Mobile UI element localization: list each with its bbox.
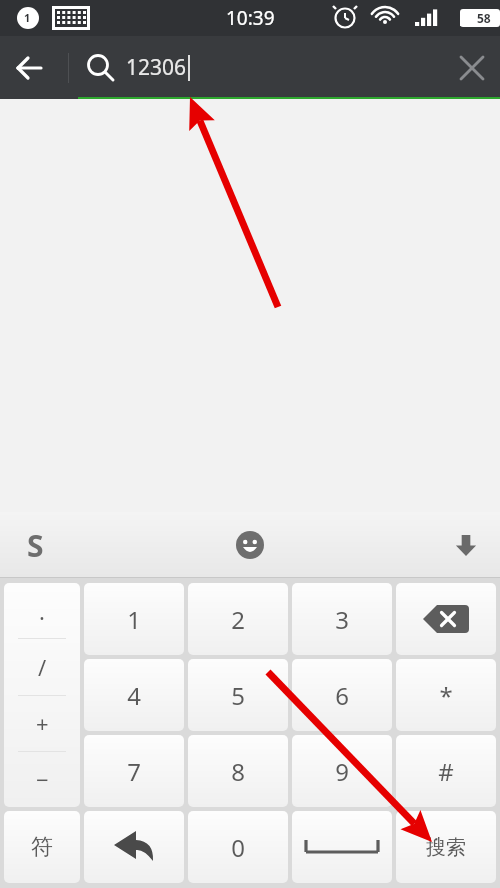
staticText: / <box>38 652 47 682</box>
staticText: 0 <box>231 831 245 864</box>
staticText: 6 <box>335 679 349 712</box>
staticText: 12306 <box>126 53 187 82</box>
button[interactable]: Sogou input <box>8 514 62 576</box>
staticText: 2 <box>231 603 245 636</box>
button[interactable]: Return <box>84 811 184 883</box>
staticText: 8 <box>231 755 245 788</box>
staticText: 58 <box>477 10 491 26</box>
staticText: 5 <box>231 679 245 712</box>
staticText: 10:39 <box>226 5 275 31</box>
staticText: + <box>36 708 49 738</box>
button[interactable]: Delete <box>396 583 496 655</box>
staticText: 7 <box>127 755 141 788</box>
button[interactable]: Clear <box>444 40 500 96</box>
button[interactable]: 符 <box>4 811 80 883</box>
button[interactable]: 8 <box>188 735 288 807</box>
button[interactable]: 2 <box>188 583 288 655</box>
button[interactable]: 7 <box>84 735 184 807</box>
button[interactable]: * <box>396 659 496 731</box>
staticText: 1 <box>127 603 141 636</box>
button[interactable]: 3 <box>292 583 392 655</box>
staticText: − <box>36 764 49 794</box>
staticText: 1 <box>24 10 31 25</box>
button[interactable]: Space <box>292 811 392 883</box>
button[interactable]: # <box>396 735 496 807</box>
button[interactable]: . <box>4 583 80 807</box>
button[interactable]: 1 <box>84 583 184 655</box>
button[interactable]: Emoji <box>219 514 281 576</box>
staticText: . <box>39 596 45 626</box>
staticText: S <box>27 525 44 566</box>
button[interactable]: 5 <box>188 659 288 731</box>
button[interactable]: 9 <box>292 735 392 807</box>
staticText: 搜索 <box>426 835 466 860</box>
staticText: * <box>439 679 453 712</box>
staticText: # <box>438 755 454 788</box>
button[interactable]: 0 <box>188 811 288 883</box>
staticText: 4 <box>127 679 141 712</box>
button[interactable]: 4 <box>84 659 184 731</box>
button[interactable]: Hide keyboard <box>438 514 494 576</box>
button[interactable]: 搜索 <box>396 811 496 883</box>
button[interactable]: 6 <box>292 659 392 731</box>
staticText: 符 <box>31 833 53 861</box>
staticText: 3 <box>335 603 349 636</box>
staticText: 9 <box>335 755 349 788</box>
button[interactable]: Back <box>0 40 56 96</box>
